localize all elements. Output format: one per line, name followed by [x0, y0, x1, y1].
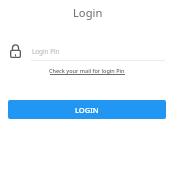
button[interactable]: LOGIN — [8, 100, 166, 119]
staticText: Check your mail for login Pin — [49, 67, 125, 74]
other: Login Pin — [10, 44, 21, 58]
staticText: Login Pin — [32, 47, 60, 56]
staticText: Login — [73, 5, 103, 20]
button[interactable]: Check your mail for login Pin — [0, 64, 174, 76]
button[interactable]: Login Pin — [0, 40, 174, 62]
staticText: LOGIN — [75, 105, 99, 115]
